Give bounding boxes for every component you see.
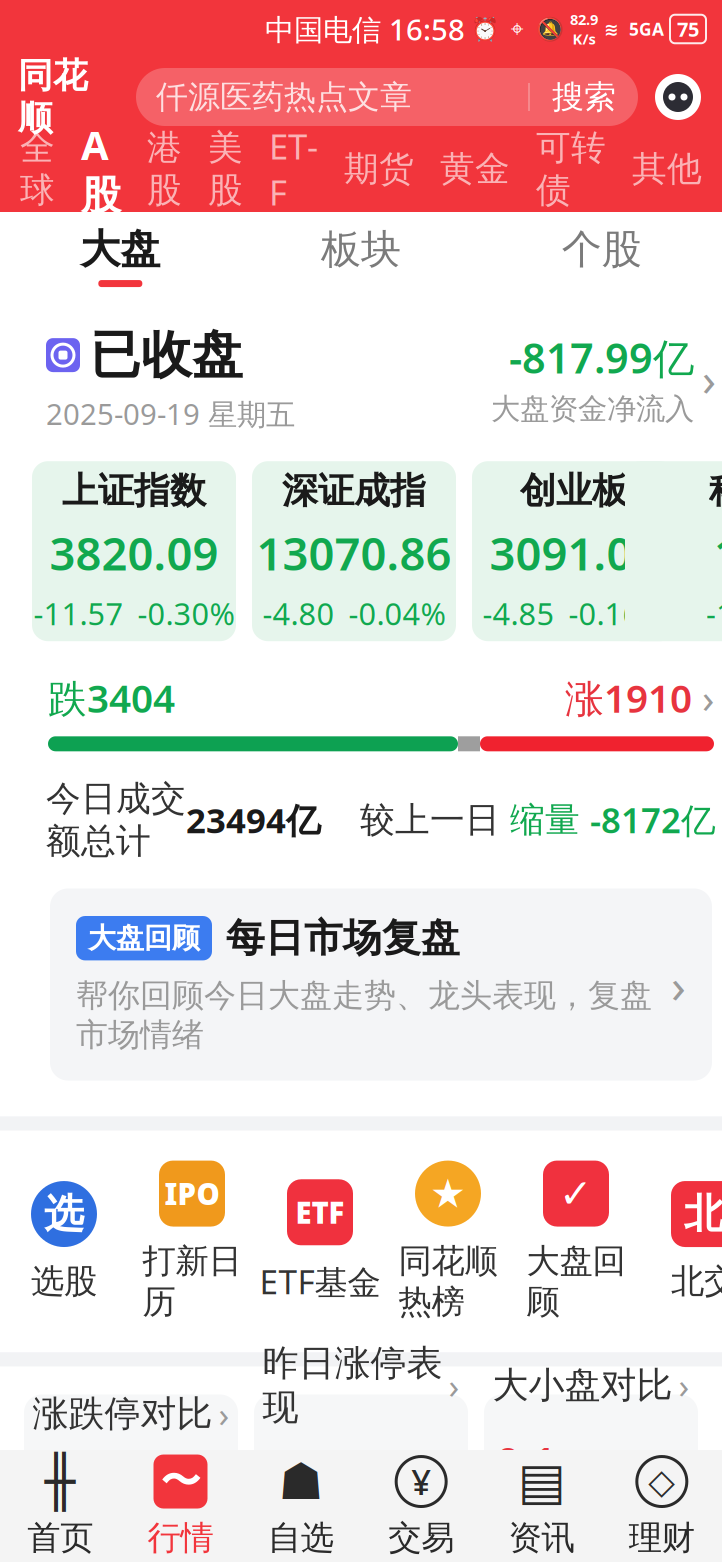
- button[interactable]: 北: [640, 1181, 722, 1302]
- button[interactable]: -817.99亿: [491, 330, 716, 427]
- staticText: 82.9: [570, 9, 598, 29]
- staticText: 黄金: [440, 148, 510, 190]
- button[interactable]: 板块: [241, 212, 481, 298]
- button[interactable]: 上证指数: [32, 461, 236, 641]
- button[interactable]: 选: [0, 1181, 128, 1302]
- button[interactable]: ETF: [256, 1179, 384, 1304]
- button[interactable]: ✓: [512, 1161, 640, 1322]
- staticText: ›: [702, 348, 716, 409]
- staticText: ETF: [295, 1193, 344, 1232]
- staticText: 同花顺热榜: [398, 1241, 497, 1322]
- staticText: 〜: [160, 1457, 200, 1506]
- staticText: -0.30%: [137, 593, 234, 634]
- button[interactable]: ╫: [0, 1450, 120, 1562]
- staticText: 行情: [147, 1517, 213, 1558]
- staticText: 仟源医药热点文章: [156, 77, 412, 117]
- staticText: 全球: [20, 126, 55, 212]
- button[interactable]: ETF: [256, 136, 331, 202]
- staticText: IPO: [164, 1174, 219, 1213]
- staticText: 大盘回顾: [526, 1241, 625, 1322]
- staticText: 北: [684, 1189, 722, 1239]
- staticText: 0.1%: [496, 1434, 556, 1547]
- staticText: 帮你回顾今日大盘走势、龙头表现，复盘市场情绪: [76, 976, 652, 1055]
- staticText: 大小盘对比: [492, 1363, 672, 1407]
- button[interactable]: ☗: [241, 1450, 361, 1562]
- staticText: 北交: [671, 1261, 722, 1302]
- button[interactable]: 跌3404: [18, 641, 722, 751]
- staticText: -4.80: [262, 593, 334, 634]
- staticText: 板块: [321, 225, 401, 274]
- staticText: 13070.86: [256, 523, 451, 583]
- staticText: -0.16%: [568, 593, 665, 634]
- button[interactable]: 其他: [619, 136, 715, 202]
- button[interactable]: 期货: [331, 136, 427, 202]
- staticText: 昨日涨停表现: [262, 1341, 442, 1429]
- staticText: 大盘回顾: [88, 921, 200, 955]
- staticText: 港股: [147, 126, 182, 212]
- button[interactable]: ◇: [602, 1450, 722, 1562]
- staticText: ◇: [648, 1462, 675, 1501]
- staticText: 2025-09-19 星期五: [46, 394, 295, 433]
- staticText: -11.57: [33, 593, 123, 634]
- button[interactable]: 全球: [7, 136, 68, 202]
- staticText: 搜索: [552, 77, 616, 117]
- staticText: 深证成指: [282, 469, 426, 513]
- staticText: 打新日历: [142, 1241, 241, 1322]
- staticText: K/s: [572, 29, 595, 48]
- staticText: ★: [430, 1171, 466, 1216]
- staticText: 上证指数: [62, 469, 206, 513]
- staticText: 创业板: [520, 469, 628, 513]
- button[interactable]: 港股: [134, 136, 195, 202]
- staticText: 23494亿: [186, 797, 321, 843]
- staticText: 涨1910: [565, 672, 692, 723]
- button[interactable]: ▤: [481, 1450, 602, 1562]
- button[interactable]: 个股: [481, 212, 722, 298]
- button[interactable]: 〜: [120, 1450, 241, 1562]
- staticText: 已收盘: [90, 324, 243, 386]
- staticText: ▤: [517, 1453, 565, 1510]
- staticText: 美股: [208, 126, 243, 212]
- staticText: 较上一日: [360, 799, 510, 841]
- staticText: 期货: [344, 148, 414, 190]
- button[interactable]: 创业板: [472, 461, 676, 641]
- staticText: ¥: [411, 1458, 431, 1504]
- staticText: 跌3404: [48, 672, 175, 723]
- staticText: 资讯: [508, 1517, 574, 1558]
- button[interactable]: 昨日涨停表现: [254, 1394, 468, 1562]
- staticText: ›: [448, 1362, 459, 1408]
- button[interactable]: A股: [68, 136, 134, 202]
- staticText: 科: [709, 469, 722, 513]
- button[interactable]: 仟源医药热点文章: [136, 68, 638, 126]
- button[interactable]: 科: [625, 461, 722, 641]
- button[interactable]: 大小盘对比: [484, 1394, 698, 1562]
- staticText: -1: [706, 593, 722, 634]
- button[interactable]: 黄金: [427, 136, 523, 202]
- staticText: A股: [81, 118, 121, 220]
- staticText: ≋ 5GA: [604, 17, 664, 40]
- staticText: ☗: [278, 1453, 323, 1510]
- staticText: 自选: [268, 1517, 334, 1558]
- staticText: 26: [143, 1463, 201, 1530]
- staticText: 交易: [388, 1517, 454, 1558]
- button[interactable]: 美股: [195, 136, 256, 202]
- staticText: 可转债: [536, 126, 606, 212]
- staticText: -4.85: [482, 593, 554, 634]
- button[interactable]: 可转债: [523, 136, 619, 202]
- staticText: 1: [714, 523, 722, 583]
- staticText: 今日成交额总计: [46, 777, 186, 862]
- button[interactable]: ¥: [361, 1450, 481, 1562]
- staticText: 首页: [27, 1517, 93, 1558]
- button[interactable]: 深证成指: [252, 461, 456, 641]
- button[interactable]: IPO: [128, 1161, 256, 1322]
- button[interactable]: 大盘回顾: [20, 862, 722, 1081]
- button[interactable]: AI 助手: [652, 71, 704, 123]
- button[interactable]: ★: [384, 1161, 512, 1322]
- staticText: 75: [677, 16, 699, 42]
- button[interactable]: 大盘: [0, 212, 241, 298]
- staticText: 大盘资金净流入: [491, 391, 694, 427]
- staticText: ›: [218, 1391, 229, 1437]
- staticText: ›: [692, 671, 714, 724]
- staticText: 选: [44, 1189, 84, 1239]
- button[interactable]: 涨跌停对比: [24, 1394, 238, 1562]
- staticText: 每日市场复盘: [226, 914, 460, 962]
